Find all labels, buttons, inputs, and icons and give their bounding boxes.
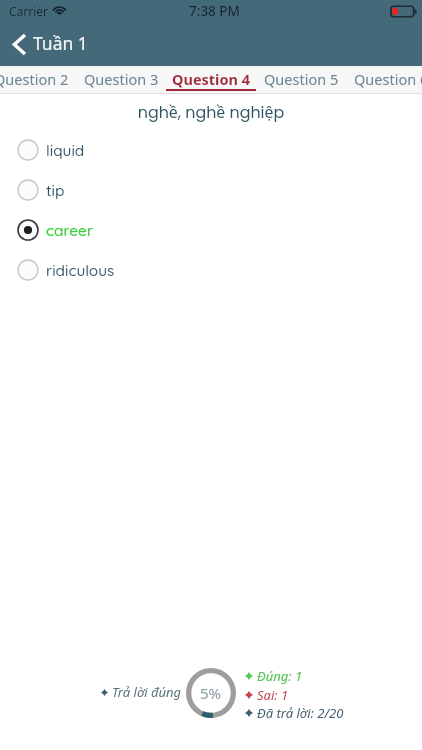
staticText: Question 5 — [264, 69, 339, 89]
staticText: 7:38 PM — [189, 2, 240, 20]
staticText: Carrier — [9, 3, 49, 19]
staticText: nghề, nghề nghiệp — [0, 101, 422, 124]
button[interactable]: Question 2 — [0, 66, 76, 94]
staticText: Đã trả lời: 2/20 — [257, 704, 344, 722]
button[interactable]: Question 6 — [346, 66, 422, 94]
button[interactable]: ridiculous — [0, 250, 422, 290]
staticText: Đúng: 1 — [257, 667, 303, 685]
staticText: Sai: 1 — [257, 686, 289, 704]
button[interactable]: career — [0, 210, 422, 250]
staticText: Trả lời đúng — [112, 683, 182, 701]
staticText: Question 3 — [84, 69, 159, 89]
staticText: Question 4 — [172, 69, 251, 89]
button[interactable]: Back — [0, 28, 98, 60]
button[interactable]: Question 3 — [76, 66, 166, 94]
button[interactable]: Question 5 — [256, 66, 346, 94]
button[interactable]: tip — [0, 170, 422, 210]
button[interactable]: liquid — [0, 130, 422, 170]
staticText: Question 6 — [354, 69, 422, 89]
staticText: career — [46, 221, 94, 240]
staticText: liquid — [46, 141, 85, 160]
staticText: Tuần 1 — [33, 31, 88, 55]
staticText: Question 2 — [0, 69, 69, 89]
staticText: tip — [46, 181, 65, 200]
staticText: 5% — [200, 683, 222, 703]
button[interactable]: Question 4 — [166, 66, 256, 94]
staticText: ridiculous — [46, 261, 115, 280]
